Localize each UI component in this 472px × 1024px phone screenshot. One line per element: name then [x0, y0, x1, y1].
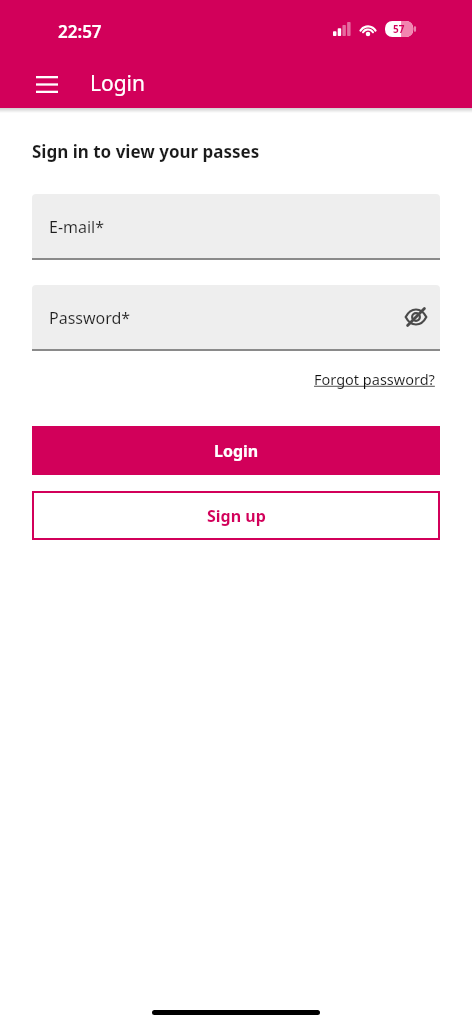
staticText: Login: [214, 440, 259, 462]
staticText: Login: [90, 69, 146, 98]
staticText: 57: [393, 22, 405, 36]
button[interactable]: Password*: [32, 285, 440, 351]
button[interactable]: Show password: [394, 295, 438, 339]
button[interactable]: Login: [32, 426, 440, 475]
button[interactable]: Forgot password?: [312, 367, 437, 391]
button[interactable]: E-mail*: [32, 194, 440, 260]
staticText: Password*: [49, 307, 131, 329]
staticText: Forgot password?: [314, 369, 435, 389]
button[interactable]: Sign up: [32, 491, 440, 540]
button[interactable]: Open navigation menu: [25, 63, 68, 106]
staticText: Sign up: [207, 505, 266, 527]
staticText: Sign in to view your passes: [32, 140, 260, 163]
staticText: 22:57: [58, 20, 102, 43]
staticText: E-mail*: [49, 216, 105, 238]
